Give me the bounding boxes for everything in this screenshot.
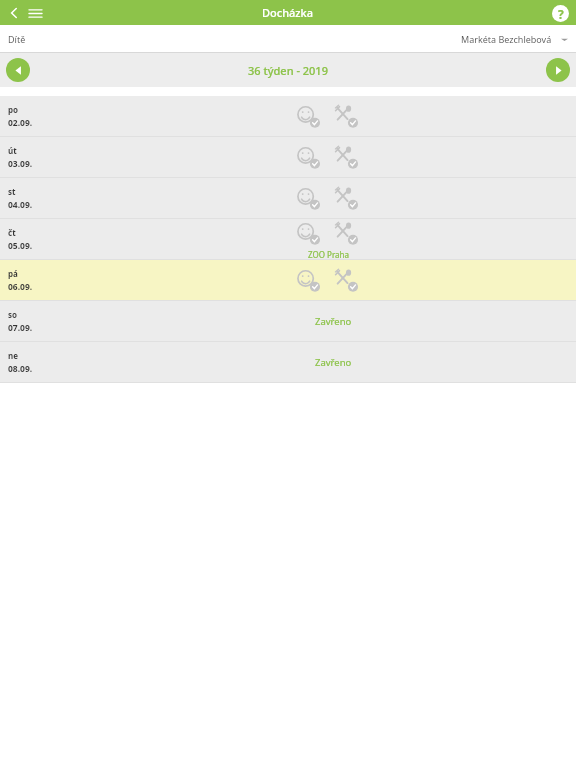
staticText: ?	[558, 6, 564, 22]
button[interactable]: Next week	[546, 58, 570, 82]
button[interactable]: út	[0, 137, 576, 178]
staticText: pá	[8, 268, 18, 279]
staticText: 05.09.	[8, 240, 33, 252]
staticText: 02.09.	[8, 117, 33, 129]
button[interactable]: Meal ordered	[333, 220, 361, 248]
staticText: Markéta Bezchlebová	[461, 33, 552, 45]
staticText: Zavřeno	[315, 315, 352, 328]
button[interactable]: Meal ordered	[333, 185, 361, 213]
button[interactable]: Menu	[24, 2, 46, 24]
staticText: 36 týden - 2019	[248, 63, 328, 78]
staticText: čt	[8, 227, 16, 238]
staticText: Zavřeno	[315, 356, 352, 369]
staticText: po	[8, 104, 19, 115]
button[interactable]: Meal ordered	[333, 144, 361, 172]
button[interactable]: po	[0, 96, 576, 137]
button[interactable]: Attendance present	[295, 144, 323, 172]
staticText: st	[8, 186, 16, 197]
button[interactable]: Previous week	[6, 58, 30, 82]
staticText: út	[8, 145, 17, 156]
button[interactable]: st	[0, 178, 576, 219]
staticText: ne	[8, 350, 18, 361]
button[interactable]: čt	[0, 219, 576, 260]
staticText: 08.09.	[8, 363, 33, 375]
button[interactable]: pá	[0, 260, 576, 301]
button[interactable]: Help	[549, 2, 571, 24]
staticText: ZOO Praha	[308, 249, 349, 260]
button[interactable]: Back	[4, 3, 24, 23]
button[interactable]: Attendance present	[295, 185, 323, 213]
button[interactable]: Attendance present	[295, 267, 323, 295]
staticText: Dítě	[8, 33, 26, 45]
button[interactable]: Attendance present	[295, 220, 323, 248]
staticText: 03.09.	[8, 158, 33, 170]
button[interactable]: Meal ordered	[333, 267, 361, 295]
staticText: 07.09.	[8, 322, 33, 334]
staticText: 06.09.	[8, 281, 33, 293]
staticText: Docházka	[262, 5, 314, 20]
staticText: so	[8, 309, 18, 320]
button[interactable]: Attendance present	[295, 103, 323, 131]
button[interactable]: Meal ordered	[333, 103, 361, 131]
button[interactable]: ne	[0, 342, 576, 383]
button[interactable]: so	[0, 301, 576, 342]
staticText: 04.09.	[8, 199, 33, 211]
button[interactable]: Markéta Bezchlebová	[461, 33, 568, 45]
